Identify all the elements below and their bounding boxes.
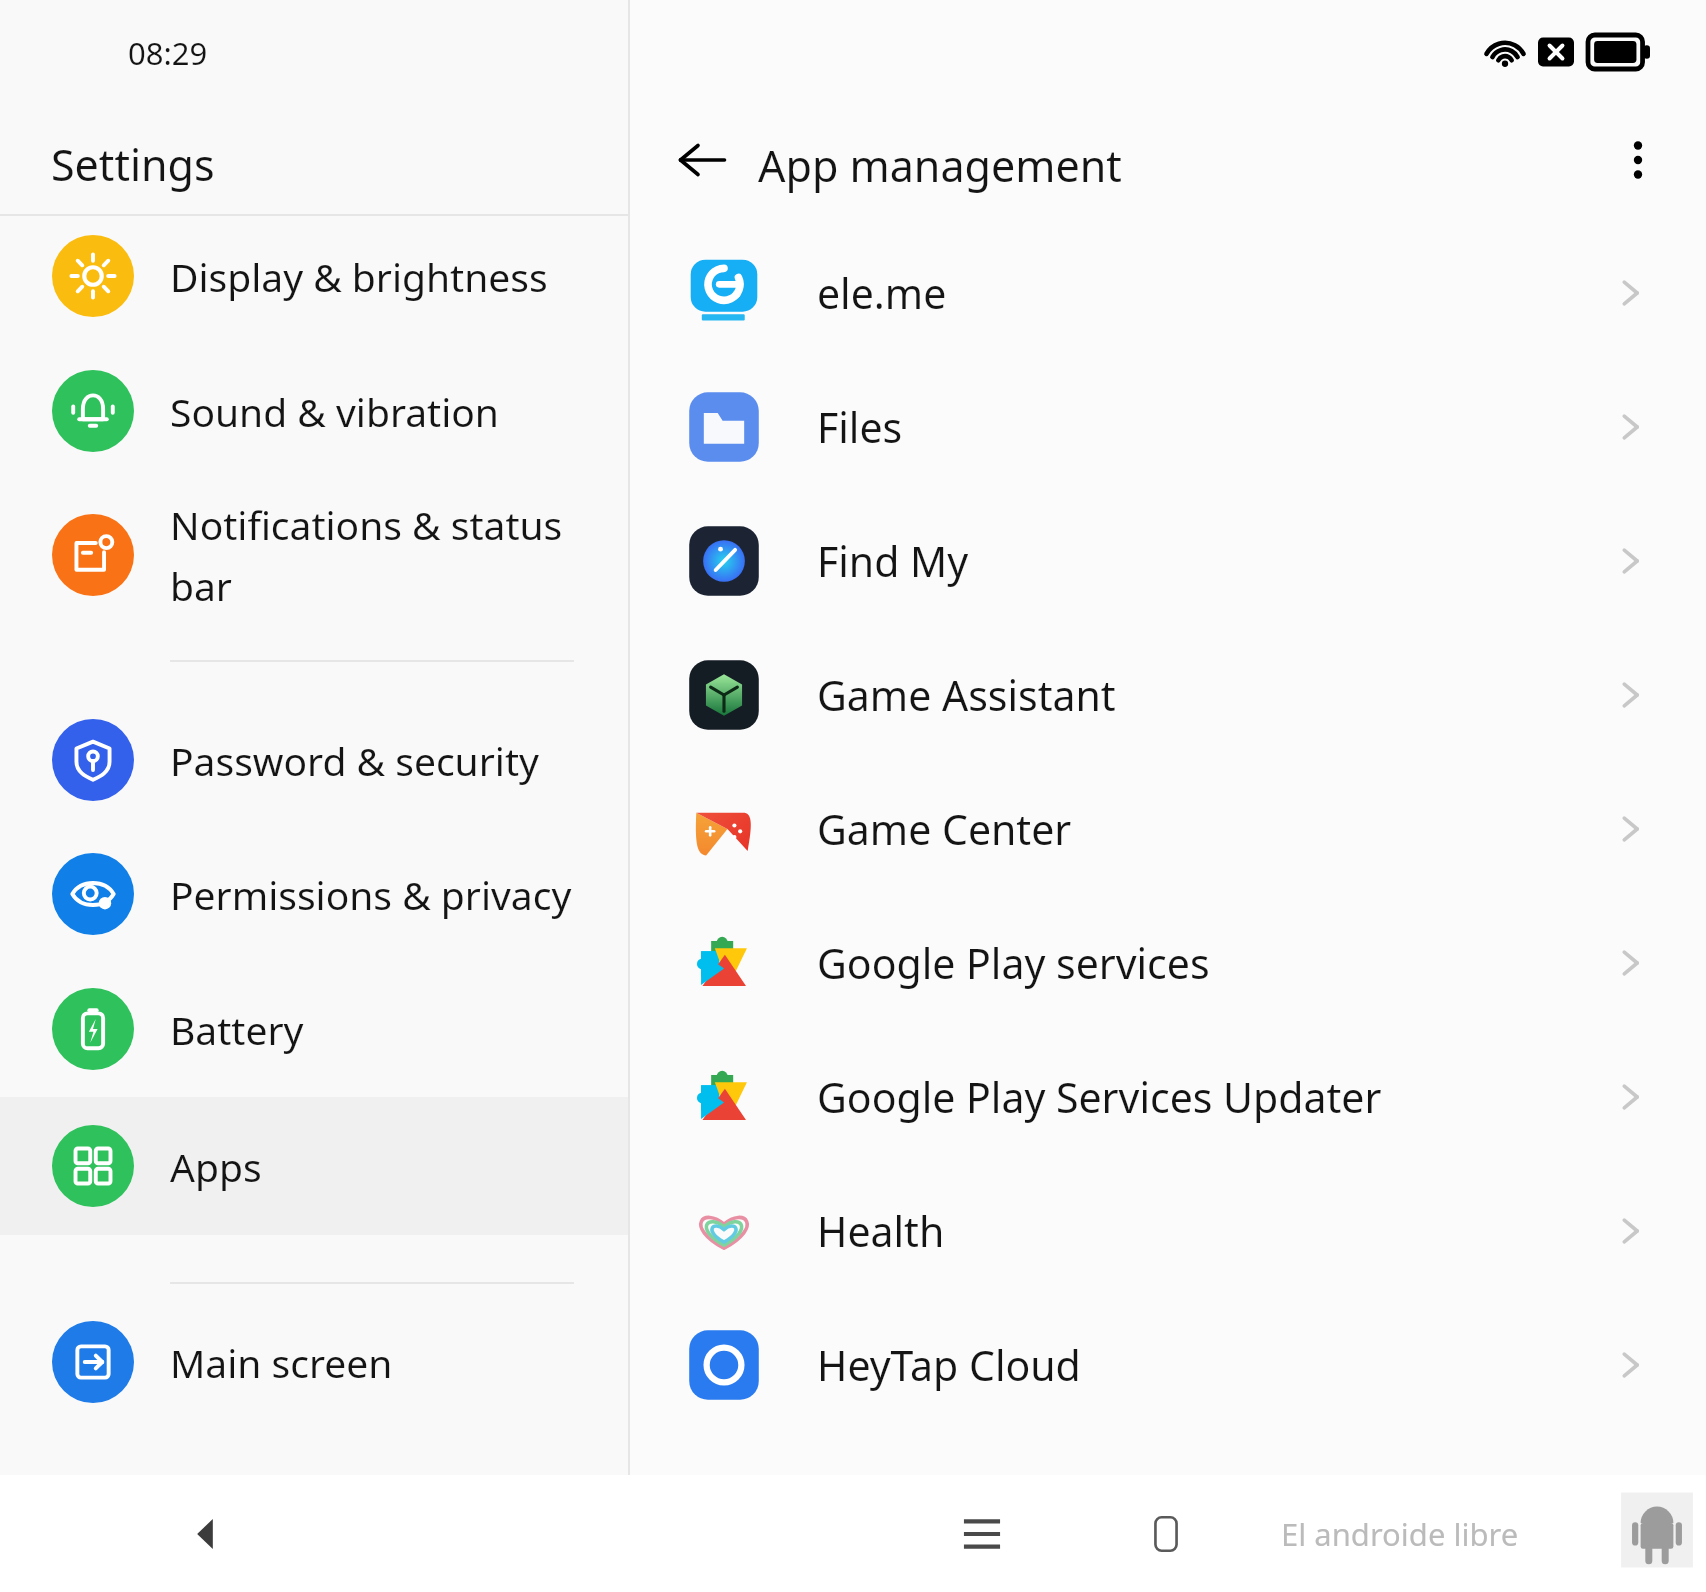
button[interactable]: Game Center — [630, 762, 1706, 896]
button[interactable]: Notifications & status — [0, 475, 628, 635]
button[interactable]: Main screen — [0, 1295, 628, 1429]
button[interactable]: Game Assistant — [630, 628, 1706, 762]
button[interactable]: Password & security — [0, 693, 628, 827]
button[interactable]: More options — [1596, 118, 1680, 202]
staticText: Google Play services — [817, 935, 1612, 991]
staticText: Settings — [51, 135, 215, 194]
button[interactable]: HeyTap Cloud — [630, 1298, 1706, 1432]
button[interactable]: Display & brightness — [0, 209, 628, 343]
staticText: App management — [758, 136, 1122, 195]
staticText: bar — [170, 559, 232, 612]
button[interactable]: Google Play services — [630, 896, 1706, 1030]
staticText: Password & security — [170, 734, 539, 787]
button[interactable]: Find My — [630, 494, 1706, 628]
staticText: Display & brightness — [170, 250, 548, 303]
button[interactable]: Recent apps — [946, 1498, 1018, 1570]
staticText: Files — [817, 399, 1612, 455]
button[interactable]: Permissions & privacy — [0, 827, 628, 961]
staticText: Game Assistant — [817, 667, 1612, 723]
button[interactable]: Google Play Services Updater — [630, 1030, 1706, 1164]
staticText: HeyTap Cloud — [817, 1337, 1612, 1393]
staticText: El androide libre — [1281, 1513, 1519, 1555]
staticText: Notifications & status — [170, 498, 563, 551]
button[interactable]: Health — [630, 1164, 1706, 1298]
button[interactable]: Sound & vibration — [0, 344, 628, 478]
staticText: Sound & vibration — [170, 385, 499, 438]
button[interactable]: ele.me — [630, 226, 1706, 360]
staticText: Game Center — [817, 801, 1612, 857]
staticText: Apps — [170, 1140, 262, 1193]
staticText: Main screen — [170, 1336, 393, 1389]
button[interactable]: Back — [170, 1498, 242, 1570]
staticText: Find My — [817, 533, 1612, 589]
button[interactable]: Home — [1130, 1498, 1202, 1570]
button[interactable]: Apps — [0, 1097, 628, 1235]
staticText: Battery — [170, 1003, 304, 1056]
staticText: Google Play Services Updater — [817, 1069, 1612, 1125]
staticText: 08:29 — [128, 32, 208, 74]
staticText: ele.me — [817, 265, 1612, 321]
button[interactable]: Battery — [0, 962, 628, 1096]
button[interactable]: Files — [630, 360, 1706, 494]
staticText: Permissions & privacy — [170, 868, 572, 921]
button[interactable]: Back — [658, 116, 746, 204]
staticText: Health — [817, 1203, 1612, 1259]
